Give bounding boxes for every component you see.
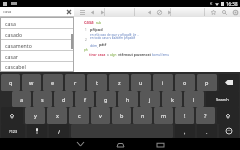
button[interactable]: x: [47, 107, 67, 124]
button[interactable]: Search: [219, 7, 229, 17]
button[interactable]: casado: [1, 29, 73, 40]
button[interactable]: !: [175, 107, 194, 124]
button[interactable]: e: [43, 74, 63, 91]
button[interactable]: h: [118, 91, 138, 107]
button[interactable]: Next: [164, 7, 174, 17]
staticText: n: [141, 112, 145, 119]
staticText: k: [171, 96, 174, 103]
button[interactable]: ?: [196, 107, 215, 124]
button[interactable]: cascabel: [1, 62, 73, 71]
staticText: 2: [85, 38, 87, 42]
staticText: m: [161, 112, 167, 119]
staticText: g: [104, 96, 108, 103]
staticText: w: [29, 79, 34, 86]
staticText: en todo caso v každém případě: [90, 36, 136, 40]
button[interactable]: s: [33, 91, 52, 107]
button[interactable]: r: [65, 74, 85, 91]
staticText: j: [149, 96, 151, 103]
staticText: s: [41, 96, 44, 103]
staticText: f: [84, 96, 86, 103]
button[interactable]: shift: [217, 107, 239, 124]
button[interactable]: g: [96, 91, 116, 107]
button[interactable]: v: [91, 107, 110, 124]
staticText: dóm,: [90, 43, 98, 47]
staticText: a: [20, 96, 24, 103]
button[interactable]: k: [162, 91, 182, 107]
staticText: p: [205, 79, 209, 86]
button[interactable]: l: [184, 91, 204, 107]
staticText: u: [139, 79, 143, 86]
button[interactable]: casa: [1, 18, 73, 29]
button[interactable]: ,: [175, 124, 195, 138]
button[interactable]: /: [49, 124, 69, 138]
button[interactable]: Hide keyboard: [69, 138, 91, 150]
staticText: casa: [3, 9, 12, 14]
staticText: t: [96, 79, 98, 86]
button[interactable]: t: [87, 74, 107, 91]
staticText: !: [184, 112, 186, 119]
staticText: y: [34, 112, 37, 119]
button[interactable]: u: [131, 74, 151, 91]
button[interactable]: Recents: [149, 138, 171, 150]
staticText: ?: [204, 112, 207, 119]
staticText: en ešt caso de que v případě, že ..: [90, 33, 139, 37]
button[interactable]: Favourite: [208, 7, 218, 17]
staticText: i: [162, 79, 164, 86]
staticText: sub: [96, 21, 102, 25]
button[interactable]: ?123: [1, 124, 25, 138]
staticText: x: [56, 112, 59, 119]
staticText: komu/čemu: [152, 53, 169, 57]
button[interactable]: casa: [0, 7, 74, 17]
button[interactable]: casar: [1, 51, 73, 62]
staticText: c: [78, 112, 81, 119]
button[interactable]: mic: [27, 124, 47, 138]
button[interactable]: c: [69, 107, 89, 124]
staticText: ,: [184, 128, 186, 135]
button[interactable]: j: [140, 91, 160, 107]
button[interactable]: b: [112, 107, 131, 124]
staticText: r: [74, 79, 77, 86]
staticText: 1: [85, 28, 87, 32]
button[interactable]: shift: [1, 107, 23, 124]
staticText: algn: [110, 53, 117, 57]
button[interactable]: n: [133, 107, 152, 124]
staticText: casa: [84, 19, 94, 25]
button[interactable]: p: [197, 74, 217, 91]
button[interactable]: Forward: [97, 7, 107, 17]
button[interactable]: casamento: [1, 40, 73, 51]
staticText: v: [99, 112, 102, 119]
button[interactable]: Settings: [230, 7, 240, 17]
button[interactable]: Previous: [144, 7, 154, 17]
staticText: e: [51, 79, 55, 86]
staticText: h: [126, 96, 130, 103]
button[interactable]: w: [22, 74, 41, 91]
staticText: cascabel: [5, 63, 26, 70]
button[interactable]: o: [175, 74, 195, 91]
button[interactable]: f: [75, 91, 94, 107]
button[interactable]: Stop: [154, 7, 164, 17]
staticText: casado: [5, 31, 23, 38]
button[interactable]: i: [153, 74, 173, 91]
button[interactable]: List: [77, 7, 87, 17]
button[interactable]: y: [25, 107, 45, 124]
staticText: ph: [84, 48, 88, 52]
staticText: pátř: [99, 42, 107, 47]
button[interactable]: del: [219, 74, 239, 91]
button[interactable]: Back: [87, 7, 97, 17]
button[interactable]: a: [12, 91, 31, 107]
button[interactable]: .: [197, 124, 217, 138]
button[interactable]: d: [54, 91, 73, 107]
staticText: €: [210, 1, 213, 6]
button[interactable]: q: [1, 74, 20, 91]
staticText: 16:38: [226, 1, 238, 7]
staticText: casar: [5, 53, 18, 60]
staticText: b: [120, 112, 124, 119]
button[interactable]: emoji: [219, 124, 239, 138]
button[interactable]: m: [154, 107, 173, 124]
button[interactable]: Clear search: [65, 8, 73, 16]
button[interactable]: Search: [206, 91, 239, 107]
staticText: casamento: [5, 42, 32, 49]
button[interactable]: z: [109, 74, 129, 91]
button[interactable]: Home: [109, 138, 131, 150]
